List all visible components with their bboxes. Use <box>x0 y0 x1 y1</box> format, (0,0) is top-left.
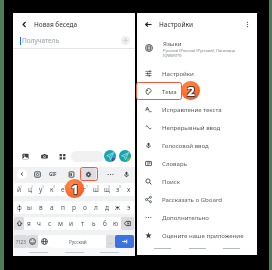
button[interactable]: д <box>101 201 112 214</box>
staticText: 2 <box>187 82 195 100</box>
staticText: Рассказать о Gboard <box>162 195 223 203</box>
button[interactable]: More <box>107 171 114 178</box>
button[interactable]: я <box>24 217 34 230</box>
button[interactable]: н <box>68 183 79 196</box>
button[interactable]: ю <box>110 217 121 230</box>
button[interactable]: Исправление текста <box>145 100 251 118</box>
staticText: 1 <box>72 179 80 197</box>
button[interactable]: ы <box>24 201 35 214</box>
button[interactable]: ц <box>24 183 35 196</box>
button[interactable]: т <box>77 217 88 230</box>
button[interactable]: Языки <box>145 35 251 61</box>
button[interactable]: л <box>90 201 101 214</box>
button[interactable]: Тема <box>145 82 251 100</box>
button[interactable]: Message <box>71 151 104 162</box>
button[interactable]: More options <box>243 20 252 29</box>
button[interactable]: Camera <box>41 153 48 160</box>
button[interactable]: Key <box>38 235 50 248</box>
button[interactable]: ш <box>90 183 101 196</box>
staticText: Поиск <box>162 177 181 185</box>
staticText: Настройки <box>162 69 194 77</box>
staticText: ?123 <box>16 239 26 245</box>
button[interactable]: р <box>68 201 79 214</box>
staticText: ф <box>17 203 22 212</box>
button[interactable]: Голосовой ввод <box>145 136 251 154</box>
button[interactable]: Voice input <box>123 171 130 178</box>
staticText: е <box>61 185 65 194</box>
button[interactable]: Рассказать о Gboard <box>145 190 251 208</box>
button[interactable]: Send <box>104 150 116 162</box>
staticText: ь <box>92 219 96 228</box>
button[interactable]: Settings <box>81 168 96 180</box>
button[interactable]: щ <box>101 183 112 196</box>
button[interactable]: Оцените наше приложение <box>145 226 251 244</box>
button[interactable]: Key <box>115 235 134 248</box>
button[interactable]: х <box>123 183 134 196</box>
button[interactable]: ж <box>112 201 123 214</box>
button[interactable]: Add recipient <box>121 36 130 45</box>
button[interactable]: й <box>14 183 24 196</box>
staticText: э <box>127 203 131 212</box>
button[interactable]: з <box>112 183 123 196</box>
staticText: 7 <box>86 184 89 189</box>
button[interactable]: м <box>55 217 66 230</box>
staticText: к <box>50 185 54 194</box>
other: Back <box>144 20 153 29</box>
button[interactable]: . <box>106 235 115 248</box>
button[interactable]: с <box>44 217 55 230</box>
button[interactable]: б <box>99 217 110 230</box>
button[interactable]: о <box>79 201 90 214</box>
button[interactable]: в <box>35 201 46 214</box>
button[interactable]: Словарь <box>145 154 251 172</box>
button[interactable]: Key <box>27 235 38 248</box>
button[interactable]: г <box>79 183 90 196</box>
staticText: Новая беседа <box>34 20 78 29</box>
staticText: Исправление текста <box>162 105 222 113</box>
staticText: Языки <box>163 39 182 47</box>
staticText: 3 <box>42 184 45 189</box>
button[interactable]: Stickers <box>34 171 41 178</box>
button[interactable]: Back <box>13 13 135 35</box>
staticText: 2 <box>188 81 196 99</box>
button[interactable]: ч <box>34 217 44 230</box>
staticText: у <box>39 185 43 194</box>
button[interactable]: Back <box>137 13 257 35</box>
button[interactable]: Back <box>17 169 27 179</box>
button[interactable]: Настройки <box>145 64 251 82</box>
button[interactable]: к <box>46 183 57 196</box>
staticText: 1 <box>71 180 79 198</box>
button[interactable]: а <box>46 201 57 214</box>
staticText: в <box>39 203 43 212</box>
staticText: Русский (Россия) (Русский), Латиница (QW… <box>163 48 236 58</box>
button[interactable]: Key <box>14 217 24 230</box>
button[interactable]: Key <box>121 217 134 230</box>
button[interactable]: Apps <box>59 153 66 160</box>
button[interactable]: п <box>57 201 68 214</box>
button[interactable]: ?123 <box>14 235 27 248</box>
button[interactable]: ь <box>88 217 99 230</box>
button[interactable]: Дополнительно <box>145 208 251 226</box>
staticText: Голосовой ввод <box>162 141 209 149</box>
staticText: ш <box>93 185 99 194</box>
button[interactable]: и <box>66 217 77 230</box>
button[interactable]: ф <box>14 201 24 214</box>
button[interactable]: Русский <box>50 235 106 248</box>
button[interactable]: Send SMS <box>119 150 131 162</box>
button[interactable]: э <box>123 201 134 214</box>
button[interactable]: GIF <box>48 167 58 181</box>
button[interactable]: Clipboard <box>68 171 75 178</box>
button[interactable]: Непрерывный ввод <box>145 118 251 136</box>
button[interactable]: Поиск <box>145 172 251 190</box>
button[interactable]: е <box>57 183 68 196</box>
button[interactable]: у <box>35 183 46 196</box>
button[interactable]: Gallery <box>22 153 29 160</box>
staticText: ч <box>37 219 41 228</box>
staticText: 1 <box>20 184 23 189</box>
staticText: 1 <box>72 181 80 198</box>
